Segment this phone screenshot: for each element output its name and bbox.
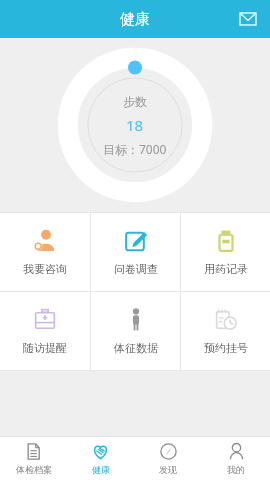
button[interactable]: 体检档案 — [0, 437, 67, 480]
staticText: 健康 — [92, 464, 110, 475]
staticText: 步数 — [123, 94, 147, 109]
button[interactable]: 预约挂号 — [181, 292, 270, 370]
button[interactable]: 体征数据 — [91, 292, 180, 370]
button[interactable]: 我的 — [202, 437, 270, 480]
button[interactable]: Messages — [234, 5, 262, 33]
staticText: 健康 — [120, 10, 150, 29]
button[interactable]: 发现 — [134, 437, 202, 480]
staticText: 我要咨询 — [23, 262, 67, 276]
staticText: 预约挂号 — [204, 341, 248, 355]
staticText: 我的 — [227, 464, 245, 475]
staticText: 发现 — [159, 464, 177, 475]
button[interactable]: 随访提醒 — [0, 292, 90, 370]
staticText: 体检档案 — [16, 464, 52, 475]
button[interactable]: 用药记录 — [181, 213, 270, 291]
staticText: 体征数据 — [114, 341, 158, 355]
staticText: 随访提醒 — [23, 341, 67, 355]
button[interactable]: 我要咨询 — [0, 213, 90, 291]
staticText: 18 — [126, 115, 144, 135]
button[interactable]: 问卷调查 — [91, 213, 180, 291]
staticText: 目标：7000 — [103, 141, 167, 157]
staticText: 用药记录 — [204, 262, 248, 276]
staticText: 问卷调查 — [114, 262, 158, 276]
button[interactable]: 健康 — [67, 437, 134, 480]
